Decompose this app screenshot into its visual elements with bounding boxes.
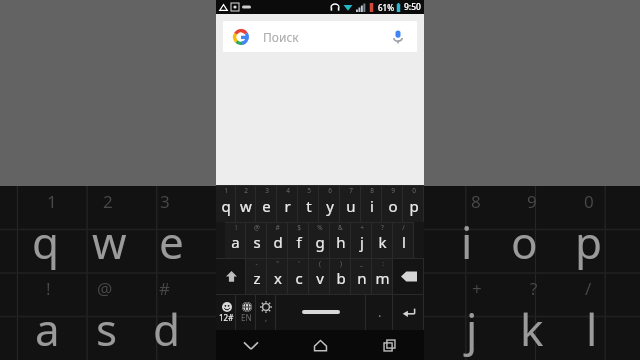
button[interactable]: ? — [372, 222, 393, 258]
staticText: g — [315, 232, 325, 252]
staticText: / — [402, 223, 405, 232]
staticText: 3 — [265, 186, 269, 195]
button[interactable]: Recent apps — [355, 330, 424, 360]
staticText: 9 — [391, 186, 395, 195]
staticText: ( — [319, 259, 321, 268]
staticText: i — [370, 196, 374, 216]
staticText: p — [409, 196, 419, 216]
staticText: 5 — [307, 186, 311, 195]
staticText: 9:50 — [404, 1, 421, 13]
staticText: ' — [298, 259, 300, 268]
button[interactable]: 4 — [277, 185, 298, 222]
button[interactable]: 2 — [236, 185, 256, 222]
button[interactable]: Emoji and numbers — [216, 294, 236, 330]
button[interactable]: Change language — [236, 294, 256, 330]
button[interactable]: Back — [216, 330, 286, 360]
staticText: w — [240, 196, 252, 216]
button[interactable]: ! — [225, 222, 246, 258]
staticText: w — [92, 212, 127, 272]
button[interactable]: Space — [276, 294, 366, 330]
staticText: z — [253, 268, 261, 288]
button[interactable]: ' — [288, 258, 309, 294]
button[interactable]: & — [330, 222, 351, 258]
staticText: b — [336, 268, 346, 288]
staticText: d — [153, 299, 181, 359]
staticText: d — [273, 232, 283, 252]
staticText: % — [317, 223, 323, 232]
staticText: 8 — [471, 190, 481, 213]
button[interactable]: Settings — [256, 294, 276, 330]
staticText: a — [35, 299, 60, 359]
staticText: p — [575, 212, 603, 272]
staticText: 4 — [286, 186, 290, 195]
button[interactable]: / — [393, 222, 414, 258]
button[interactable]: # — [267, 222, 288, 258]
staticText: _ — [360, 259, 363, 268]
staticText: 0 — [412, 186, 416, 195]
staticText: . — [378, 303, 382, 321]
button[interactable]: ( — [309, 258, 330, 294]
button[interactable]: 0 — [403, 185, 424, 222]
button[interactable]: Shift — [216, 258, 246, 294]
staticText: y — [326, 196, 334, 216]
staticText: 61% — [378, 2, 394, 13]
staticText: - — [255, 259, 258, 268]
staticText: ! — [46, 277, 51, 300]
staticText: 1 — [224, 186, 228, 195]
button[interactable]: @ — [246, 222, 267, 258]
button[interactable]: ) — [330, 258, 351, 294]
button[interactable]: Backspace — [393, 258, 424, 294]
staticText: r — [284, 196, 291, 216]
staticText: ? — [381, 223, 384, 232]
staticText: & — [338, 223, 343, 232]
staticText: $ — [297, 223, 301, 232]
staticText: j — [466, 299, 478, 359]
button[interactable]: + — [351, 222, 372, 258]
staticText: c — [295, 268, 303, 288]
button[interactable]: - — [246, 258, 267, 294]
button[interactable]: Enter — [393, 294, 424, 330]
button[interactable]: " — [267, 258, 288, 294]
button[interactable]: Period — [366, 294, 393, 330]
staticText: # — [159, 277, 170, 300]
button[interactable]: $ — [288, 222, 309, 258]
staticText: 0 — [584, 190, 594, 213]
staticText: 9 — [527, 190, 537, 213]
button[interactable]: Поиск — [223, 21, 417, 52]
staticText: / — [585, 277, 592, 300]
staticText: n — [357, 268, 367, 288]
staticText: v — [316, 268, 324, 288]
staticText: k — [520, 299, 544, 359]
button[interactable]: 8 — [361, 185, 382, 222]
staticText: : — [382, 259, 384, 268]
staticText: 1 — [47, 190, 57, 213]
button[interactable]: % — [309, 222, 330, 258]
staticText: 3 — [160, 190, 170, 213]
button[interactable]: _ — [351, 258, 372, 294]
staticText: a — [231, 232, 240, 252]
button[interactable]: Home — [286, 330, 355, 360]
button[interactable]: 9 — [382, 185, 403, 222]
staticText: u — [346, 196, 356, 216]
staticText: o — [388, 196, 398, 216]
staticText: x — [274, 268, 282, 288]
staticText: 2 — [244, 186, 248, 195]
button[interactable]: 7 — [340, 185, 361, 222]
button[interactable]: 6 — [319, 185, 340, 222]
staticText: 6 — [328, 186, 332, 195]
staticText: l — [402, 232, 406, 252]
button[interactable]: 3 — [256, 185, 277, 222]
button[interactable]: Voice search — [389, 28, 407, 46]
staticText: 8 — [370, 186, 374, 195]
button[interactable]: 5 — [298, 185, 319, 222]
staticText: e — [262, 196, 271, 216]
button[interactable]: 1 — [216, 185, 236, 222]
button[interactable]: : — [372, 258, 393, 294]
staticText: f — [296, 232, 302, 252]
staticText: k — [378, 232, 387, 252]
staticText: # — [275, 223, 280, 232]
staticText: Поиск — [263, 29, 299, 45]
staticText: @ — [254, 223, 260, 232]
staticText: s — [96, 299, 118, 359]
staticText: q — [221, 196, 231, 216]
